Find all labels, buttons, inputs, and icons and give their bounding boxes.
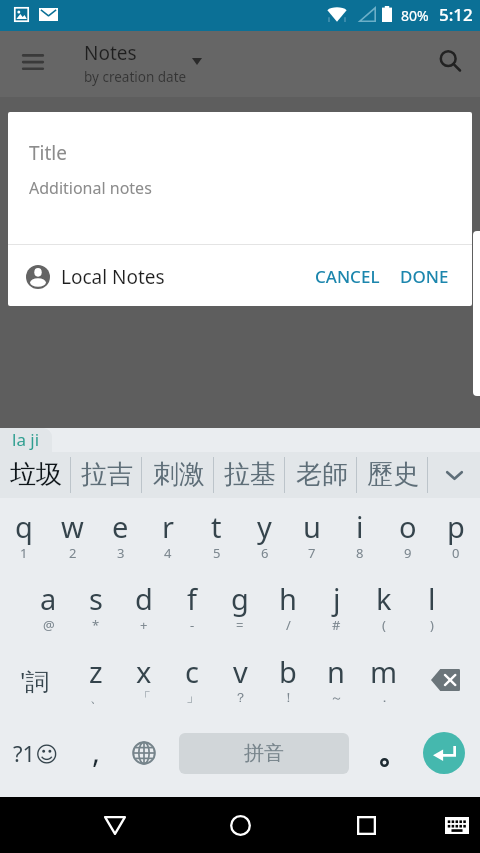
staticText: DONE bbox=[400, 265, 449, 288]
staticText: x bbox=[136, 652, 152, 691]
button[interactable]: a bbox=[24, 579, 72, 637]
staticText: , bbox=[92, 731, 101, 772]
staticText: b bbox=[279, 652, 297, 691]
button[interactable]: d bbox=[120, 579, 168, 637]
staticText: 6 bbox=[261, 544, 269, 562]
button[interactable]: l bbox=[408, 579, 456, 637]
staticText: e bbox=[112, 507, 129, 546]
button[interactable]: Local Notes bbox=[18, 258, 173, 296]
button[interactable]: y bbox=[240, 507, 288, 565]
button[interactable]: h bbox=[264, 579, 312, 637]
staticText: n bbox=[327, 652, 345, 691]
button[interactable]: Full stop bbox=[362, 725, 406, 781]
staticText: c bbox=[185, 652, 199, 691]
staticText: ?1☺ bbox=[13, 738, 59, 768]
staticText: Notes bbox=[84, 40, 137, 66]
button[interactable]: Change keyboard language bbox=[120, 725, 168, 781]
button[interactable]: o bbox=[384, 507, 432, 565]
button[interactable]: Search bbox=[427, 38, 475, 86]
staticText: + bbox=[140, 616, 148, 634]
staticText: t bbox=[211, 507, 222, 546]
button[interactable]: Back bbox=[91, 801, 139, 849]
staticText: 拼音 bbox=[244, 741, 284, 766]
button[interactable]: Recent apps bbox=[342, 801, 390, 849]
staticText: y bbox=[257, 507, 272, 546]
staticText: j bbox=[333, 579, 341, 618]
button[interactable]: Switch keyboard bbox=[433, 801, 480, 849]
staticText: a bbox=[40, 579, 57, 618]
staticText: k bbox=[376, 579, 392, 618]
staticText: ( bbox=[382, 616, 386, 634]
button[interactable]: z bbox=[72, 652, 120, 710]
button[interactable]: 拉基 bbox=[214, 452, 285, 498]
staticText: Local Notes bbox=[61, 264, 165, 290]
button[interactable]: q bbox=[0, 507, 48, 565]
button[interactable]: f bbox=[168, 579, 216, 637]
button[interactable]: 拉吉 bbox=[71, 452, 142, 498]
button[interactable]: 垃圾 bbox=[0, 452, 71, 498]
button[interactable]: k bbox=[360, 579, 408, 637]
button[interactable]: g bbox=[216, 579, 264, 637]
staticText: CANCEL bbox=[315, 265, 380, 288]
button[interactable]: Symbols and emoji bbox=[5, 725, 67, 781]
button[interactable]: Enter bbox=[423, 732, 465, 774]
button[interactable]: DONE bbox=[391, 257, 458, 296]
button[interactable]: Backspace bbox=[414, 651, 476, 709]
button[interactable]: x bbox=[120, 652, 168, 710]
staticText: 5 bbox=[213, 544, 221, 562]
button[interactable]: n bbox=[312, 652, 360, 710]
button[interactable]: 老師 bbox=[286, 452, 357, 498]
button[interactable]: Symbol input mode bbox=[7, 651, 63, 709]
staticText: p bbox=[447, 507, 465, 546]
staticText: u bbox=[303, 507, 321, 546]
button[interactable]: Comma bbox=[72, 725, 120, 781]
button[interactable]: Navigation menu bbox=[9, 38, 57, 86]
staticText: ) bbox=[430, 616, 434, 634]
button[interactable]: Home bbox=[216, 801, 264, 849]
button[interactable]: j bbox=[312, 579, 360, 637]
button[interactable]: b bbox=[264, 652, 312, 710]
staticText: by creation date bbox=[84, 68, 187, 86]
staticText: Title bbox=[29, 140, 67, 166]
staticText: = bbox=[236, 616, 244, 634]
staticText: ． bbox=[378, 689, 391, 705]
staticText: ？ bbox=[234, 689, 247, 705]
button[interactable]: 刺激 bbox=[143, 452, 214, 498]
staticText: Additional notes bbox=[29, 177, 152, 199]
button[interactable]: t bbox=[192, 507, 240, 565]
staticText: w bbox=[61, 507, 84, 546]
staticText: @ bbox=[43, 616, 55, 634]
button[interactable]: w bbox=[48, 507, 96, 565]
button[interactable]: u bbox=[288, 507, 336, 565]
staticText: 3 bbox=[117, 544, 125, 562]
button[interactable]: c bbox=[168, 652, 216, 710]
button[interactable]: More candidates bbox=[429, 452, 480, 498]
staticText: 0 bbox=[452, 544, 460, 562]
button[interactable]: p bbox=[432, 507, 480, 565]
button[interactable]: la ji bbox=[0, 428, 52, 452]
button[interactable]: 歷史 bbox=[357, 452, 428, 498]
staticText: 刺激 bbox=[153, 458, 205, 491]
button[interactable]: 拼音 bbox=[179, 733, 349, 774]
staticText: g bbox=[231, 579, 249, 618]
staticText: 7 bbox=[308, 544, 316, 562]
button[interactable]: v bbox=[216, 652, 264, 710]
staticText: z bbox=[89, 652, 103, 691]
staticText: o bbox=[399, 507, 417, 546]
staticText: 垃圾 bbox=[10, 458, 62, 491]
staticText: la ji bbox=[12, 428, 40, 451]
button[interactable]: Notes bbox=[84, 40, 187, 86]
button[interactable]: CANCEL bbox=[306, 257, 389, 296]
button[interactable]: s bbox=[72, 579, 120, 637]
staticText: 老師 bbox=[296, 458, 348, 491]
button[interactable]: e bbox=[96, 507, 144, 565]
staticText: '詞 bbox=[20, 664, 50, 697]
staticText: h bbox=[279, 579, 297, 618]
staticText: 拉基 bbox=[224, 458, 276, 491]
button[interactable]: m bbox=[360, 652, 408, 710]
staticText: - bbox=[190, 616, 195, 634]
staticText: 4 bbox=[164, 544, 172, 562]
button[interactable]: i bbox=[336, 507, 384, 565]
button[interactable]: r bbox=[144, 507, 192, 565]
staticText: f bbox=[187, 579, 197, 618]
